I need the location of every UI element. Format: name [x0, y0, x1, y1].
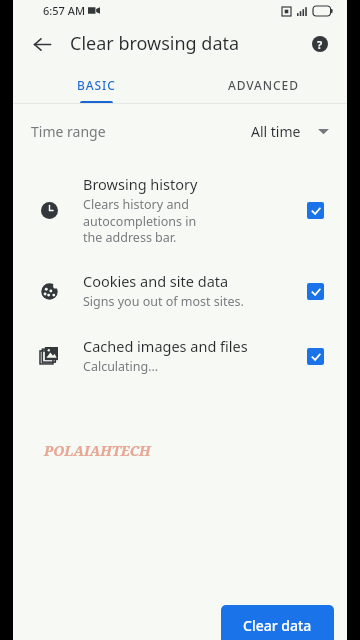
staticText: Cached images and files [83, 336, 248, 356]
button[interactable]: Toggle Cached images and files [299, 340, 331, 372]
button[interactable]: ADVANCED [180, 66, 347, 104]
staticText: Signs you out of most sites. [83, 293, 244, 310]
staticText: Clear browsing data [70, 31, 240, 56]
staticText: Clears history and autocompletions in th… [83, 196, 289, 245]
button[interactable]: Toggle Cookies and site data [299, 275, 331, 307]
button[interactable]: Cookies and site data [13, 265, 347, 316]
button[interactable]: Browsing history [13, 168, 347, 251]
staticText: Calculating… [83, 358, 159, 375]
staticText: ADVANCED [228, 77, 299, 93]
staticText: Cookies and site data [83, 271, 229, 291]
staticText: Browsing history [83, 174, 198, 194]
button[interactable]: Help [302, 26, 338, 62]
staticText: Time range [31, 122, 106, 141]
button[interactable]: Toggle Browsing history [299, 194, 331, 226]
staticText: BASIC [77, 77, 116, 93]
staticText: ? [317, 37, 323, 52]
button[interactable]: Clear data [221, 605, 334, 640]
staticText: 6:57 AM [43, 3, 86, 18]
staticText: All time [251, 122, 301, 141]
button[interactable]: Time range [13, 112, 347, 150]
button[interactable]: Cached images and files [13, 330, 347, 381]
staticText: Clear data [243, 616, 312, 635]
button[interactable]: Back [23, 25, 61, 63]
staticText: POLAIAHTECH [44, 441, 151, 460]
button[interactable]: BASIC [13, 66, 180, 104]
